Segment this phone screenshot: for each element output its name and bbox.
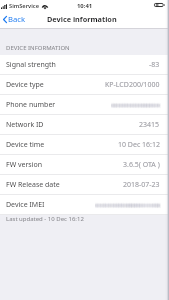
button[interactable]: FW version	[0, 155, 169, 175]
button[interactable]: Device IMEI	[0, 195, 169, 215]
button[interactable]: Back	[0, 11, 30, 27]
button[interactable]: FW Release date	[0, 175, 169, 195]
staticText: SimService	[9, 2, 40, 10]
button[interactable]: Device type	[0, 75, 169, 95]
button[interactable]: Device time	[0, 135, 169, 155]
staticText: 2018-07-23	[123, 180, 160, 190]
staticText: 3.6.5( OTA )	[123, 160, 160, 170]
staticText: 23415	[139, 120, 160, 130]
staticText: Phone number	[6, 100, 56, 110]
staticText: Signal strength	[6, 60, 56, 70]
staticText: Device IMEI	[6, 200, 45, 210]
staticText: FW version	[6, 160, 43, 170]
staticText: Network ID	[6, 120, 44, 130]
button[interactable]: Phone number	[0, 95, 169, 115]
staticText: KP-LCD200/1000	[105, 80, 160, 90]
staticText: -83	[149, 60, 160, 70]
staticText: Device information	[47, 14, 117, 24]
staticText: FW Release date	[6, 180, 60, 190]
staticText: 10:41	[77, 2, 93, 10]
staticText: Last updated - 10 Dec 16:12	[6, 215, 84, 223]
staticText: Back	[8, 14, 26, 24]
staticText: Device type	[6, 80, 44, 90]
staticText: DEVICE INFORMATION	[6, 44, 70, 52]
button[interactable]: Signal strength	[0, 55, 169, 75]
staticText: Device time	[6, 140, 45, 150]
staticText: 10 Dec 16:12	[118, 140, 160, 150]
button[interactable]: Network ID	[0, 115, 169, 135]
